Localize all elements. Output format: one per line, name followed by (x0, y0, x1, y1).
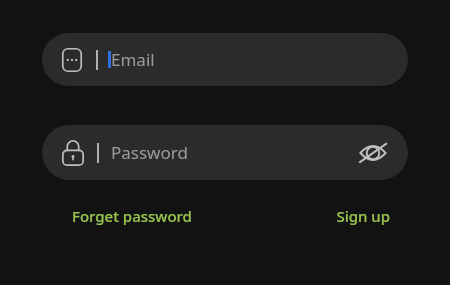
staticText: Email (111, 48, 155, 71)
button[interactable]: Sign up (332, 202, 394, 230)
staticText: Password (111, 141, 356, 164)
button[interactable]: Email (42, 33, 408, 86)
button[interactable]: Password (42, 125, 408, 180)
button[interactable]: Show password (356, 136, 390, 170)
button[interactable]: Forget password (68, 202, 196, 230)
staticText: Forget password (72, 206, 192, 226)
staticText: Sign up (336, 206, 390, 226)
